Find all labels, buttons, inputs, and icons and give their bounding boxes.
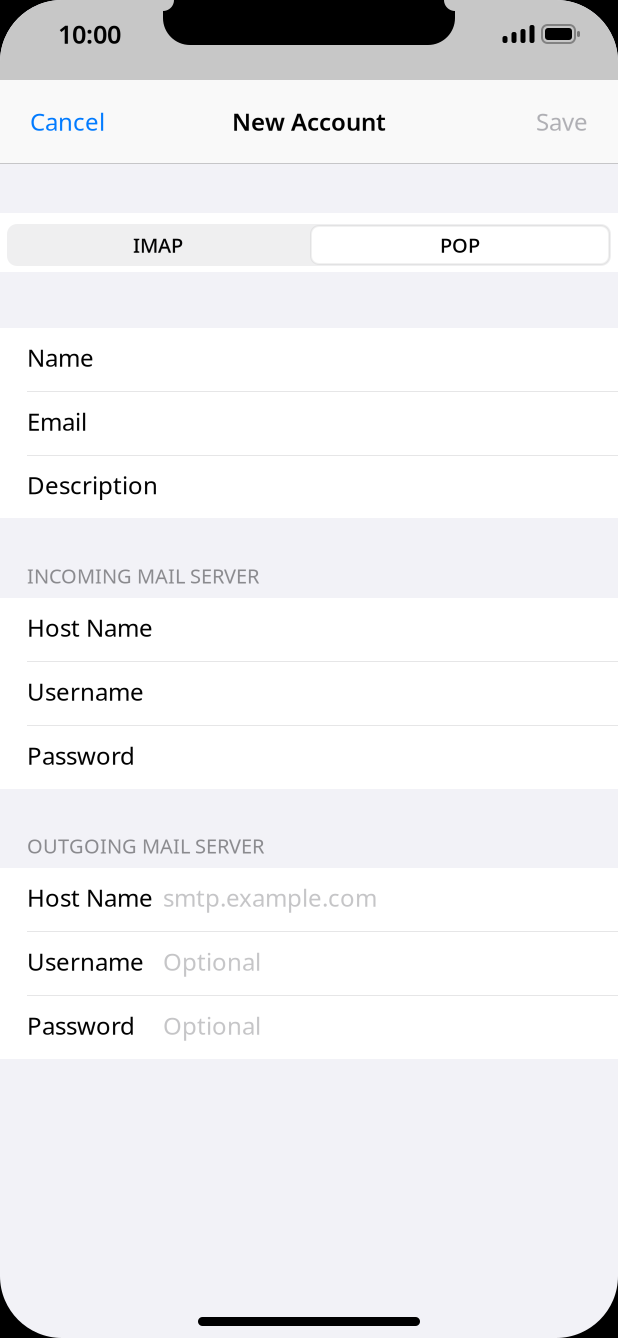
button[interactable]: Description [0,456,618,518]
staticText: Username [27,946,144,977]
staticText: Cancel [30,106,105,137]
button[interactable]: Host Name [0,598,618,661]
button[interactable]: Cancel [0,86,135,156]
staticText: smtp.example.com [163,882,377,913]
button[interactable]: Username [0,932,618,995]
button[interactable]: IMAP [7,224,309,266]
staticText: Host Name [27,882,153,913]
button[interactable]: Save [506,86,618,156]
staticText: Password [27,1010,135,1041]
button[interactable]: Host Name [0,868,618,931]
staticText: Description [27,469,158,501]
staticText: Username [27,676,144,707]
staticText: Name [27,342,94,373]
staticText: POP [440,232,480,258]
staticText: IMAP [133,232,183,258]
staticText: New Account [232,106,386,137]
staticText: 10:00 [58,17,121,51]
staticText: INCOMING MAIL SERVER [27,562,259,589]
staticText: OUTGOING MAIL SERVER [27,832,264,859]
staticText: Optional [163,946,261,977]
button[interactable]: Name [0,328,618,391]
staticText: Email [27,406,87,437]
staticText: Save [536,106,588,137]
button[interactable]: Password [0,726,618,789]
button[interactable]: Email [0,392,618,455]
staticText: Host Name [27,612,153,643]
button[interactable]: Username [0,662,618,725]
staticText: Password [27,740,135,771]
staticText: Optional [163,1010,261,1041]
button[interactable]: Password [0,996,618,1059]
button[interactable]: POP [309,224,611,266]
